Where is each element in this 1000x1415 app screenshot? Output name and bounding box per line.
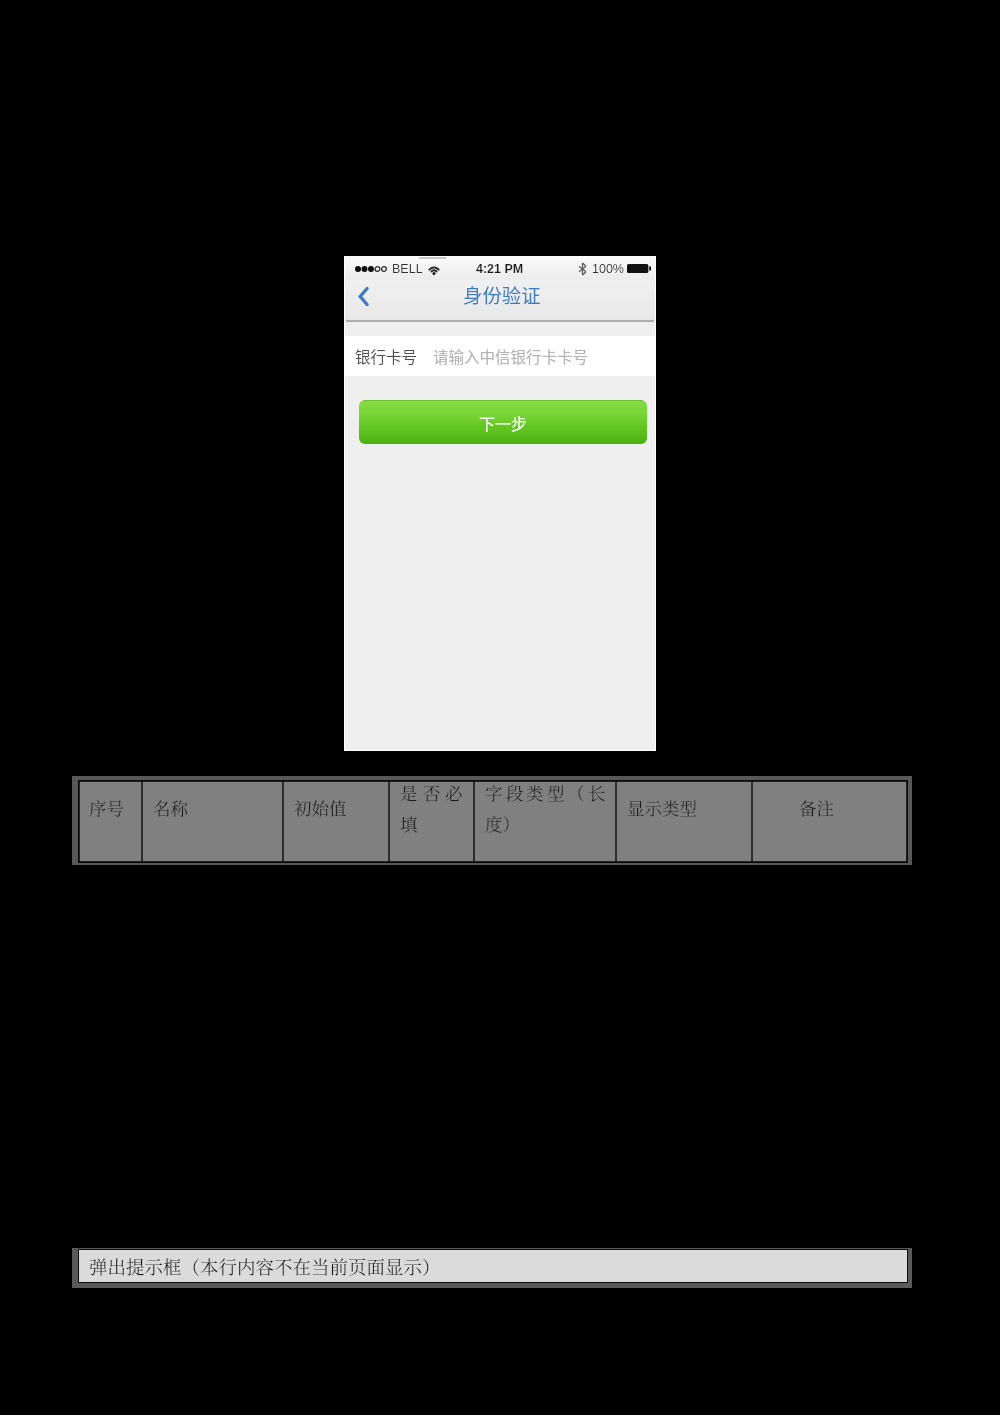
staticText: 请输入中信银行卡卡号 <box>433 345 589 367</box>
staticText: 身份验证 <box>463 280 541 308</box>
staticText: 填 <box>400 811 418 836</box>
staticText: 初始值 <box>294 795 347 820</box>
staticText: 否 <box>423 780 441 805</box>
button[interactable]: 显示类型 <box>616 780 752 863</box>
staticText: 银行卡号 <box>355 345 418 367</box>
staticText: 型 <box>547 780 565 805</box>
staticText: 序号 <box>89 795 124 820</box>
staticText: （ <box>567 780 585 805</box>
staticText: BELL <box>392 262 423 276</box>
button[interactable]: 是 <box>389 780 474 863</box>
staticText: 弹出提示框（本行内容不在当前页面显示） <box>89 1253 441 1280</box>
button[interactable]: 银行卡号 <box>345 336 655 376</box>
staticText: 类 <box>526 780 544 805</box>
staticText: 必 <box>445 780 463 805</box>
staticText: 备注 <box>799 795 834 820</box>
button[interactable]: 弹出提示框（本行内容不在当前页面显示） <box>78 1249 908 1283</box>
staticText: 4:21 PM <box>476 262 524 276</box>
staticText: 字 <box>485 780 503 805</box>
staticText: 显示类型 <box>627 795 697 820</box>
staticText: 度） <box>485 811 520 836</box>
button[interactable]: 备注 <box>752 780 908 863</box>
button[interactable]: 名称 <box>142 780 283 863</box>
button[interactable]: Back <box>345 276 381 317</box>
staticText: 长 <box>588 780 606 805</box>
button[interactable]: 字 <box>474 780 616 863</box>
staticText: 是 <box>400 780 418 805</box>
staticText: 100% <box>592 262 624 276</box>
staticText: 段 <box>506 780 524 805</box>
button[interactable]: 下一步 <box>359 400 647 444</box>
staticText: 名称 <box>153 795 188 820</box>
staticText: 下一步 <box>479 411 528 434</box>
button[interactable]: 序号 <box>78 780 142 863</box>
button[interactable]: 初始值 <box>283 780 389 863</box>
